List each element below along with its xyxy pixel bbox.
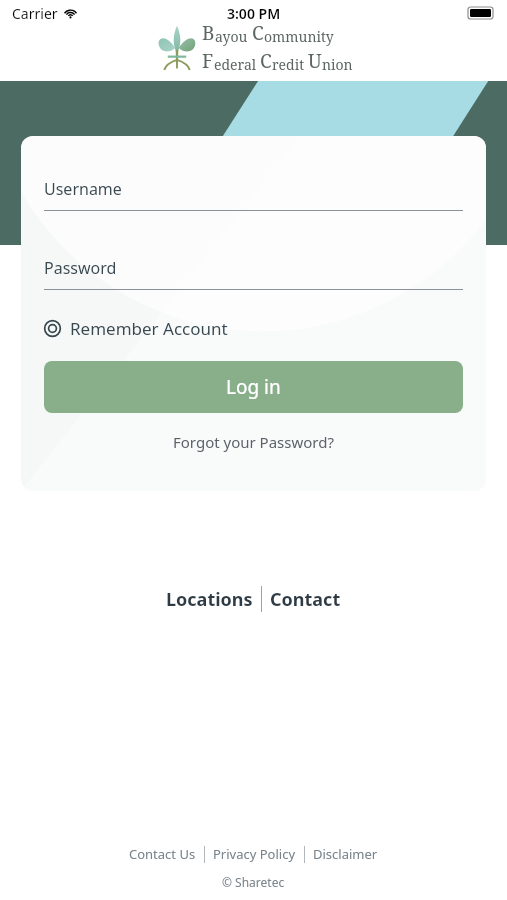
staticText: F: [202, 48, 214, 74]
button[interactable]: Log in: [44, 361, 463, 413]
staticText: Log in: [226, 374, 281, 400]
staticText: Disclaimer: [313, 845, 378, 863]
staticText: redit: [272, 55, 308, 74]
button[interactable]: Privacy Policy: [205, 845, 304, 863]
staticText: Forgot your Password?: [173, 432, 334, 452]
button[interactable]: Forgot your Password?: [44, 432, 463, 452]
staticText: Username: [44, 178, 122, 200]
staticText: Locations: [166, 587, 253, 612]
button[interactable]: Contact: [262, 587, 349, 612]
staticText: ederal: [214, 55, 260, 74]
staticText: © Sharetec: [222, 874, 285, 890]
button[interactable]: Remember Account toggle: [44, 317, 228, 340]
button[interactable]: Disclaimer: [305, 845, 386, 863]
button[interactable]: Password: [44, 257, 463, 290]
button[interactable]: Contact Us: [121, 845, 204, 863]
staticText: U: [308, 48, 322, 74]
staticText: B: [202, 20, 215, 46]
other: Remember Account toggle: [44, 320, 61, 337]
staticText: C: [260, 48, 272, 74]
staticText: nion: [322, 55, 353, 74]
staticText: 3:00 PM: [227, 4, 281, 23]
button[interactable]: Locations: [158, 587, 261, 612]
staticText: Remember Account: [70, 317, 228, 340]
staticText: ommunity: [264, 27, 334, 46]
staticText: Privacy Policy: [213, 845, 296, 863]
staticText: Password: [44, 257, 117, 279]
staticText: Carrier: [12, 4, 58, 23]
staticText: Contact: [270, 587, 341, 612]
staticText: ayou: [215, 27, 252, 46]
staticText: Contact Us: [129, 845, 196, 863]
button[interactable]: Username: [44, 178, 463, 211]
staticText: C: [252, 20, 264, 46]
